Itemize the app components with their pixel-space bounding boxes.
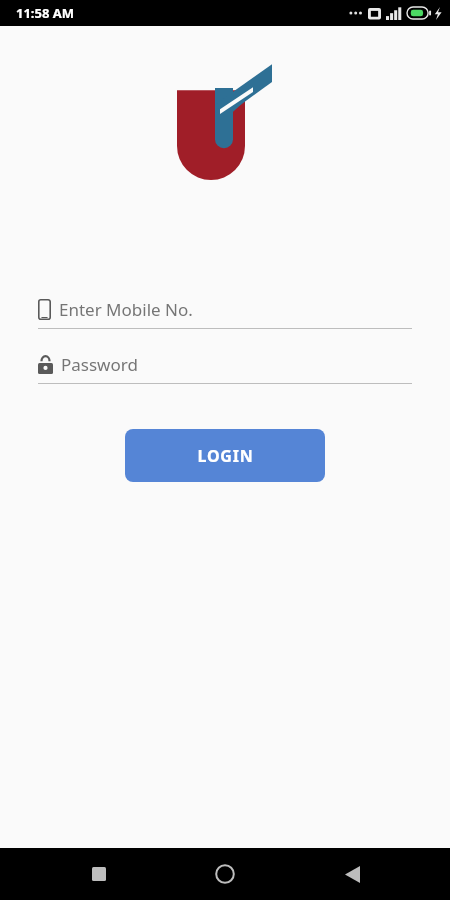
button[interactable]: LOGIN bbox=[125, 429, 325, 482]
button[interactable]: Home bbox=[197, 848, 253, 900]
button[interactable]: Enter Mobile No. bbox=[38, 292, 412, 329]
button[interactable]: Recent apps bbox=[71, 848, 127, 900]
button[interactable]: Password bbox=[38, 347, 412, 384]
staticText: LOGIN bbox=[197, 445, 254, 467]
staticText: Password bbox=[61, 353, 138, 376]
button[interactable]: Back bbox=[324, 848, 380, 900]
staticText: Enter Mobile No. bbox=[59, 298, 193, 321]
other: App logo bbox=[175, 62, 275, 180]
staticText: 11:58 AM bbox=[16, 4, 75, 22]
